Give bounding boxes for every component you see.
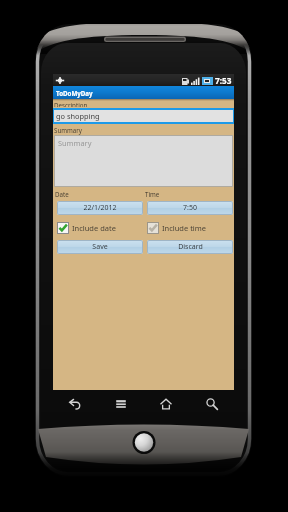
button[interactable]: Discard xyxy=(147,240,233,254)
button[interactable]: Search xyxy=(201,393,223,415)
staticText: Description xyxy=(54,101,88,107)
staticText: Date xyxy=(55,190,69,198)
button[interactable]: Include date xyxy=(57,221,143,234)
staticText: ToDoMyDay xyxy=(56,89,93,97)
staticText: 22/1/2012 xyxy=(83,203,117,213)
staticText: Include time xyxy=(162,223,207,233)
staticText: Save xyxy=(92,242,108,252)
staticText: Summary xyxy=(58,138,92,148)
button[interactable]: Save xyxy=(57,240,143,254)
button[interactable]: go shopping xyxy=(54,110,233,122)
staticText: go shopping xyxy=(56,111,100,121)
button[interactable]: 22/1/2012 xyxy=(57,201,143,215)
button[interactable]: 7:50 xyxy=(147,201,233,215)
button[interactable]: Include time xyxy=(147,221,234,234)
button[interactable]: Home xyxy=(155,393,177,415)
button[interactable]: Back xyxy=(64,393,86,415)
staticText: 7:53 xyxy=(215,75,232,86)
staticText: Time xyxy=(145,190,160,198)
staticText: Summary xyxy=(54,126,82,134)
button[interactable]: Summary xyxy=(54,135,233,187)
staticText: Include date xyxy=(72,223,116,233)
button[interactable]: Menu xyxy=(110,393,132,415)
staticText: 7:50 xyxy=(183,203,197,213)
staticText: Discard xyxy=(178,242,203,252)
